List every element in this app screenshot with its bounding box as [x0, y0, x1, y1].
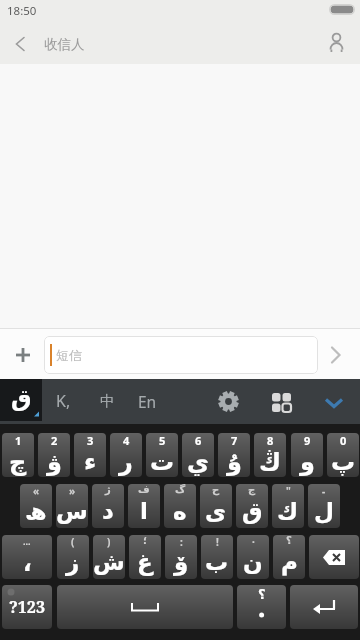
staticText: ى [205, 498, 227, 525]
button[interactable]: ژ [92, 484, 124, 528]
staticText: م [281, 549, 298, 576]
staticText: · [252, 535, 255, 549]
button[interactable]: ق [0, 379, 42, 421]
staticText: ل [314, 498, 334, 525]
staticText: 3 [87, 433, 94, 448]
button[interactable] [272, 393, 292, 413]
button[interactable]: 7 [218, 433, 250, 477]
staticText: ڭ [259, 448, 281, 476]
staticText: 0 [340, 433, 347, 448]
button[interactable]: ج [236, 484, 268, 528]
button[interactable] [44, 336, 318, 374]
button[interactable]: : [165, 535, 197, 579]
button[interactable] [216, 389, 241, 414]
button[interactable]: - [308, 484, 340, 528]
button[interactable] [11, 343, 35, 367]
button[interactable] [322, 29, 350, 57]
staticText: " [286, 484, 291, 498]
staticText: 5 [159, 433, 166, 448]
staticText: ف [138, 484, 150, 496]
button[interactable]: ! [201, 535, 233, 579]
staticText: 收信人 [44, 36, 85, 53]
button[interactable]: گ [164, 484, 196, 528]
staticText: K, [56, 390, 71, 412]
button[interactable]: ... [2, 535, 52, 579]
staticText: 18:50 [7, 3, 37, 19]
staticText: ! [216, 535, 219, 549]
button[interactable]: 2 [38, 433, 70, 477]
staticText: غ [137, 549, 153, 576]
button[interactable]: 9 [291, 433, 323, 477]
staticText: ج [248, 484, 256, 496]
staticText: ز [66, 549, 80, 576]
staticText: ھ [25, 498, 47, 525]
button[interactable] [325, 343, 349, 367]
staticText: ي [187, 448, 209, 476]
staticText: د [102, 498, 114, 525]
button[interactable]: ح [200, 484, 232, 528]
staticText: 8 [267, 433, 274, 448]
button[interactable]: 5 [146, 433, 178, 477]
button[interactable]: ) [93, 535, 125, 579]
staticText: س [56, 498, 88, 525]
staticText: 1 [15, 433, 22, 448]
staticText: ا [140, 498, 148, 525]
staticText: ك [277, 498, 299, 525]
staticText: « [33, 484, 40, 498]
staticText: ژ [105, 484, 111, 496]
staticText: ) [107, 535, 111, 549]
button[interactable] [6, 30, 34, 58]
staticText: 6 [195, 433, 202, 448]
staticText: - [322, 484, 326, 498]
button[interactable] [57, 585, 233, 629]
button[interactable]: 4 [110, 433, 142, 477]
staticText: ۋ [47, 448, 62, 476]
button[interactable]: 3 [74, 433, 106, 477]
button[interactable]: ؟ [237, 585, 286, 629]
staticText: ، [23, 550, 32, 577]
staticText: ق [242, 498, 263, 525]
button[interactable] [290, 585, 358, 629]
button[interactable]: 0 [327, 433, 359, 477]
staticText: ( [71, 535, 75, 549]
staticText: : [180, 535, 183, 549]
staticText: 7 [231, 433, 238, 448]
staticText: En [138, 391, 157, 412]
button[interactable]: ؟ [273, 535, 305, 579]
button[interactable]: " [272, 484, 304, 528]
staticText: ?123 [9, 596, 45, 618]
button[interactable]: « [20, 484, 52, 528]
button[interactable]: · [237, 535, 269, 579]
staticText: ح [212, 484, 220, 496]
staticText: » [69, 484, 76, 498]
staticText: ن [243, 549, 263, 576]
button[interactable] [322, 393, 346, 411]
button[interactable]: 6 [182, 433, 214, 477]
button[interactable]: K, [48, 383, 78, 419]
staticText: ە [173, 498, 187, 525]
button[interactable] [309, 535, 359, 579]
staticText: پ [331, 448, 356, 476]
staticText: ش [93, 549, 125, 576]
staticText: ء [84, 448, 97, 476]
button[interactable]: ?123 [2, 585, 52, 629]
staticText: و [300, 448, 315, 476]
button[interactable]: En [132, 383, 162, 419]
staticText: ت [150, 448, 175, 476]
staticText: ۆ [174, 549, 189, 576]
button[interactable]: 中 [92, 383, 122, 419]
staticText: 中 [100, 392, 115, 411]
button[interactable]: 1 [2, 433, 34, 477]
staticText: 短信 [56, 347, 82, 363]
button[interactable]: ف [128, 484, 160, 528]
staticText: 4 [123, 433, 130, 448]
staticText: 9 [304, 433, 311, 448]
button[interactable]: 8 [254, 433, 286, 477]
button[interactable]: » [56, 484, 88, 528]
staticText: ؛ [143, 535, 147, 547]
button[interactable]: ( [57, 535, 89, 579]
staticText: ؟ [258, 587, 266, 602]
staticText: ب [205, 549, 229, 576]
staticText: چ [9, 448, 27, 476]
button[interactable]: ؛ [129, 535, 161, 579]
